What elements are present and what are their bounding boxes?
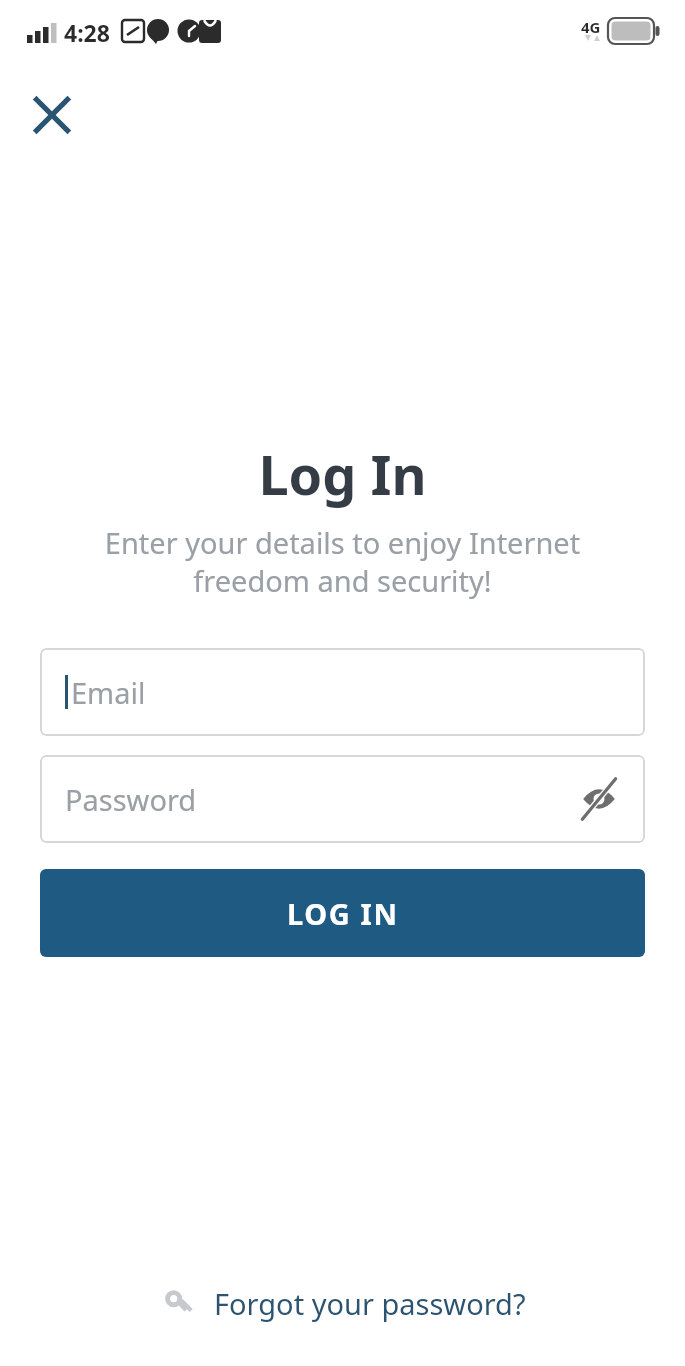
staticText: Email (71, 673, 146, 712)
staticText: Password (65, 780, 197, 819)
button[interactable]: Show password (575, 775, 623, 823)
button[interactable]: Forgot your password? (150, 1278, 536, 1329)
staticText: Forgot your password? (214, 1284, 526, 1323)
button[interactable]: Close (22, 85, 82, 145)
staticText: LOG IN (287, 894, 399, 933)
button[interactable]: Password (40, 755, 645, 843)
staticText: Enter your details to enjoy Internet fre… (40, 523, 645, 600)
staticText: 4G (581, 17, 601, 37)
button[interactable]: LOG IN (40, 869, 645, 957)
staticText: 4:28 (64, 17, 110, 48)
button[interactable]: Email (40, 648, 645, 736)
staticText: Log In (258, 437, 427, 511)
